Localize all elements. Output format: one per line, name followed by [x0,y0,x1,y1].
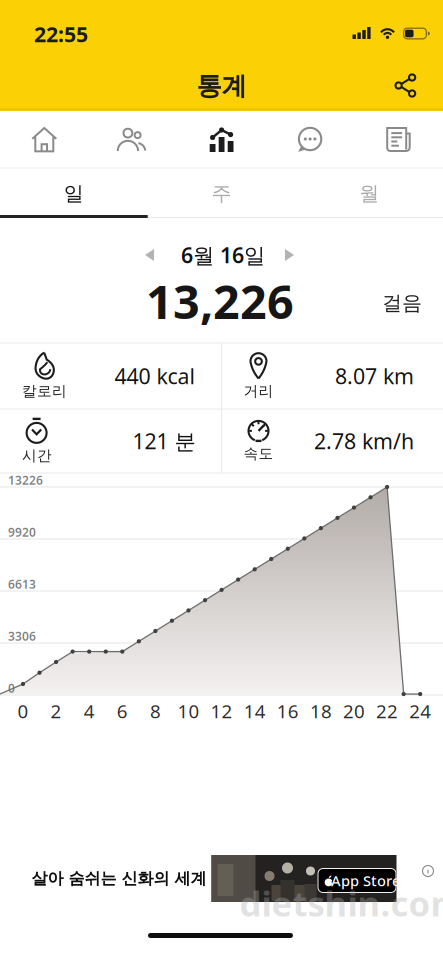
staticText: 440 kcal [114,362,195,390]
staticText: 걸음 [382,291,422,315]
button[interactable]: 통계 [177,111,266,167]
staticText: 2 [51,699,62,723]
button[interactable]: 일 [0,169,148,218]
staticText: 121 분 [132,427,195,455]
button[interactable]: 소식 [354,111,443,167]
staticText: 9920 [8,524,36,540]
staticText: 22:55 [34,20,88,48]
staticText: 칼로리 [22,382,67,400]
button[interactable]: 이전 날짜 [129,235,169,275]
staticText: 월 [359,181,379,206]
button[interactable]: 주 [148,169,295,218]
staticText: 18 [310,699,332,723]
staticText: 22 [376,699,398,723]
staticText: 12 [211,699,233,723]
staticText: 13,226 [146,270,294,332]
staticText: 10 [177,699,199,723]
staticText: 주 [211,181,231,206]
staticText: 8.07 km [335,362,414,390]
staticText: 3306 [8,628,36,644]
staticText: 6월 16일 [181,241,265,269]
staticText: 16 [277,699,299,723]
staticText: 0 [8,680,15,696]
staticText: 통계 [196,70,246,101]
staticText: 14 [244,699,266,723]
staticText: 20 [343,699,365,723]
staticText: App Store [331,871,400,890]
staticText: 6613 [8,576,36,592]
staticText: 거리 [243,382,273,400]
staticText: 24 [409,699,431,723]
staticText: 8 [150,699,161,723]
button[interactable]: 광고 [36,855,406,902]
button[interactable]: 다음 날짜 [269,235,309,275]
button[interactable]: 공유 [383,63,427,107]
staticText: 일 [64,181,84,206]
staticText: 6 [117,699,128,723]
button[interactable]: 월 [295,169,443,218]
staticText: 2.78 km/h [314,427,414,455]
staticText: 시간 [22,446,52,464]
button[interactable]: 광고 정보 [418,861,438,881]
staticText: 속도 [243,444,273,462]
staticText: 13226 [8,472,43,488]
button[interactable]: 홈 [0,111,89,167]
staticText: dietshin.com [239,880,443,926]
staticText: 0 [17,699,28,723]
staticText: 살아 숨쉬는 신화의 세계 [31,869,206,888]
button[interactable]: 친구 [89,111,177,167]
staticText: 4 [84,699,95,723]
button[interactable]: 채팅 [266,111,354,167]
